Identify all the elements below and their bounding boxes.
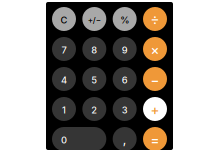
button[interactable]: − xyxy=(143,67,167,91)
button[interactable]: 2 xyxy=(82,97,106,121)
staticText: 5 xyxy=(91,75,97,86)
staticText: 0 xyxy=(61,135,67,146)
staticText: × xyxy=(150,42,159,58)
button[interactable]: 9 xyxy=(113,37,137,61)
button[interactable]: 4 xyxy=(52,67,76,91)
staticText: C xyxy=(60,15,67,26)
button[interactable]: ÷ xyxy=(143,7,167,31)
button[interactable]: 0 xyxy=(52,127,106,150)
button[interactable]: , xyxy=(113,127,137,150)
button[interactable]: +/− xyxy=(82,7,106,31)
staticText: 9 xyxy=(122,45,128,56)
staticText: 8 xyxy=(91,45,97,56)
button[interactable]: 3 xyxy=(113,97,137,121)
staticText: − xyxy=(150,72,159,88)
button[interactable]: = xyxy=(143,127,167,150)
button[interactable]: × xyxy=(143,37,167,61)
staticText: + xyxy=(150,102,159,117)
button[interactable]: 1 xyxy=(52,97,76,121)
button[interactable]: 8 xyxy=(82,37,106,61)
button[interactable]: + xyxy=(143,97,167,121)
staticText: 6 xyxy=(122,75,128,86)
staticText: 4 xyxy=(61,75,67,86)
button[interactable]: % xyxy=(113,7,137,31)
staticText: = xyxy=(150,132,159,148)
button[interactable]: 6 xyxy=(113,67,137,91)
button[interactable]: C xyxy=(52,7,76,31)
staticText: 1 xyxy=(62,105,66,116)
button[interactable]: 7 xyxy=(52,37,76,61)
staticText: 2 xyxy=(91,105,97,116)
staticText: 7 xyxy=(61,45,66,56)
staticText: +/− xyxy=(88,15,101,25)
staticText: 3 xyxy=(122,105,128,116)
button[interactable]: 5 xyxy=(82,67,106,91)
staticText: , xyxy=(123,133,127,147)
staticText: ÷ xyxy=(150,12,159,27)
staticText: % xyxy=(120,15,129,26)
